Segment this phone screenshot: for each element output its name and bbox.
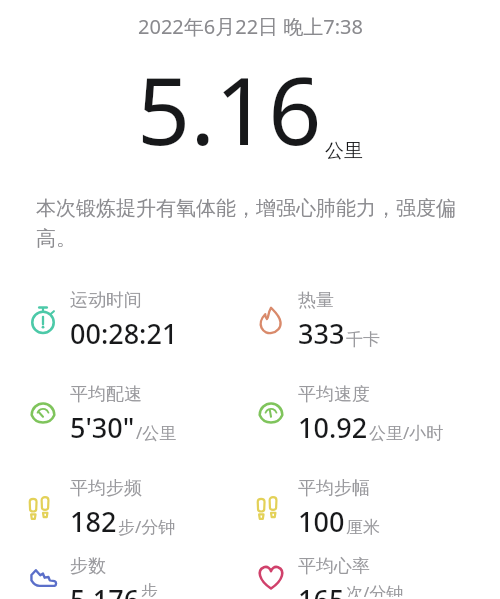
staticText: 平均配速	[70, 383, 142, 406]
button[interactable]: 平均速度	[250, 367, 500, 461]
staticText: 厘米	[346, 517, 380, 538]
button[interactable]: 步数	[0, 555, 250, 599]
staticText: 5.16	[137, 46, 322, 173]
button[interactable]: 平均步幅	[250, 461, 500, 555]
staticText: 182	[70, 503, 117, 540]
staticText: 平均心率	[298, 555, 370, 578]
staticText: 平均步频	[70, 477, 142, 500]
other: 步数	[26, 560, 60, 594]
staticText: 步/分钟	[118, 515, 176, 538]
staticText: 333	[298, 315, 345, 352]
staticText: 165	[298, 581, 345, 599]
other: 平均步幅	[254, 491, 288, 525]
staticText: 次/分钟	[346, 581, 404, 597]
staticText: 本次锻炼提升有氧体能，增强心肺能力，强度偏高。	[36, 196, 466, 251]
staticText: 公里	[325, 139, 363, 163]
staticText: 平均速度	[298, 383, 370, 406]
staticText: 步	[141, 581, 158, 597]
other: 平均速度	[254, 397, 288, 431]
staticText: /公里	[136, 421, 177, 444]
staticText: 5,176	[70, 581, 140, 599]
button[interactable]: 运动时间	[0, 273, 250, 367]
other: 热量	[254, 303, 288, 337]
staticText: 平均步幅	[298, 477, 370, 500]
button[interactable]: 平均心率	[250, 555, 500, 599]
staticText: 运动时间	[70, 289, 142, 312]
other: 运动时间	[26, 303, 60, 337]
staticText: 热量	[298, 289, 334, 312]
staticText: 100	[298, 503, 345, 540]
staticText: 5'30"	[70, 409, 135, 446]
staticText: 公里/小时	[369, 421, 444, 444]
button[interactable]: 热量	[250, 273, 500, 367]
other: 平均心率	[254, 560, 288, 594]
other: 平均配速	[26, 397, 60, 431]
staticText: 10.92	[298, 409, 368, 446]
button[interactable]: 平均步频	[0, 461, 250, 555]
staticText: 2022年6月22日 晚上7:38	[138, 13, 363, 40]
staticText: 千卡	[346, 329, 380, 350]
staticText: 00:28:21	[70, 315, 178, 352]
button[interactable]: 平均配速	[0, 367, 250, 461]
staticText: 步数	[70, 555, 106, 578]
other: 平均步频	[26, 491, 60, 525]
